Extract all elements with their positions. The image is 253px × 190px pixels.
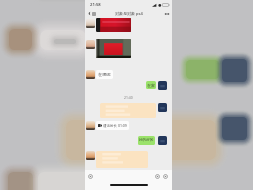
button[interactable]: 在家 bbox=[146, 81, 156, 89]
button[interactable]: My avatar bbox=[158, 136, 167, 145]
button[interactable]: 通话时长 01:09 bbox=[96, 121, 129, 130]
staticText: 对象是对象 ps4 bbox=[115, 11, 143, 16]
button[interactable]: More options bbox=[164, 9, 170, 18]
button[interactable]: Message bbox=[100, 103, 156, 118]
button[interactable]: My avatar bbox=[158, 81, 167, 90]
button[interactable]: Contact avatar bbox=[86, 151, 95, 160]
button[interactable]: 好的好的 bbox=[138, 136, 155, 145]
button[interactable]: Voice input bbox=[87, 173, 93, 179]
staticText: 21:40 bbox=[124, 95, 133, 100]
button[interactable]: Contact avatar bbox=[86, 121, 95, 130]
button[interactable]: Contact avatar bbox=[86, 70, 95, 79]
button[interactable]: More functions bbox=[162, 173, 168, 179]
button[interactable]: Contact avatar bbox=[86, 19, 95, 28]
staticText: 在家 bbox=[147, 83, 155, 88]
button[interactable]: Photo message bbox=[96, 18, 131, 32]
button[interactable]: Back bbox=[86, 9, 92, 18]
button[interactable]: 在哪呢 bbox=[96, 70, 113, 79]
button[interactable]: Emoji bbox=[154, 173, 160, 179]
button[interactable]: Unread count bbox=[92, 12, 96, 16]
staticText: 21:58 bbox=[90, 2, 101, 8]
staticText: 在哪呢 bbox=[98, 72, 111, 77]
button[interactable]: Contact avatar bbox=[86, 40, 95, 49]
staticText: 通话时长 01:09 bbox=[103, 123, 127, 128]
button[interactable]: Message bbox=[96, 151, 148, 168]
button[interactable]: My avatar bbox=[158, 103, 167, 112]
staticText: 好的好的 bbox=[139, 138, 154, 143]
button[interactable]: Photo message bbox=[96, 39, 131, 58]
